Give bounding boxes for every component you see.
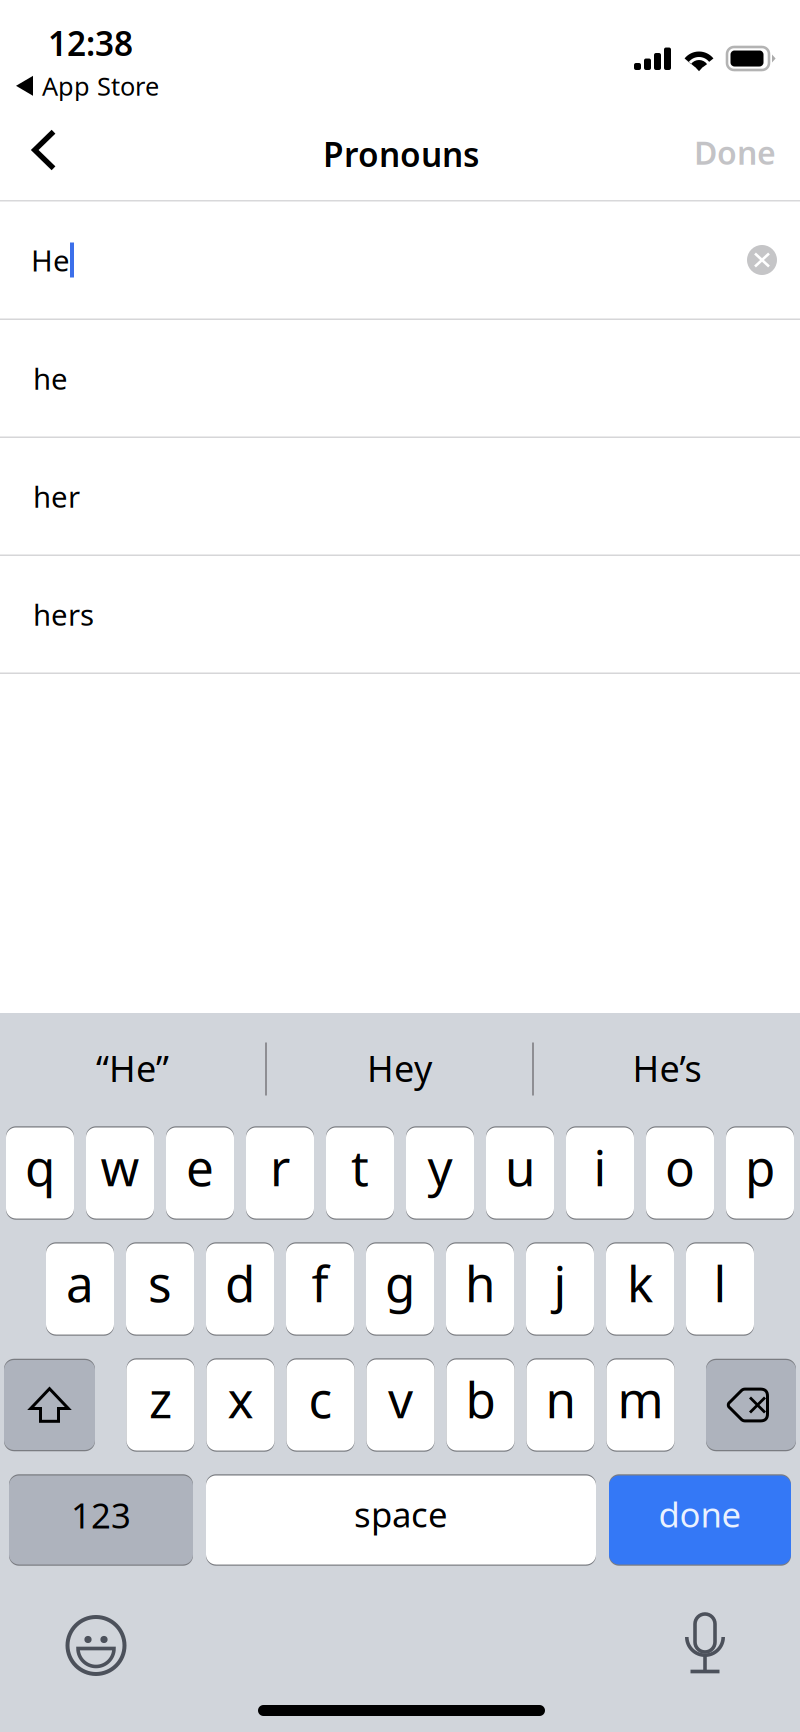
button[interactable]: Emoji xyxy=(67,1617,124,1674)
staticText: t xyxy=(351,1134,369,1200)
button[interactable]: Back xyxy=(0,105,82,195)
button[interactable]: her xyxy=(0,438,800,556)
button[interactable]: Delete xyxy=(706,1358,796,1451)
staticText: “He” xyxy=(96,1044,169,1092)
staticText: z xyxy=(149,1366,172,1432)
staticText: f xyxy=(311,1250,328,1316)
staticText: u xyxy=(505,1134,535,1200)
staticText: space xyxy=(354,1491,448,1537)
staticText: he xyxy=(33,359,68,398)
staticText: a xyxy=(66,1250,94,1316)
staticText: her xyxy=(33,477,80,516)
button[interactable]: r xyxy=(246,1126,314,1220)
button[interactable]: e xyxy=(166,1126,234,1220)
button[interactable]: n xyxy=(526,1358,594,1452)
button[interactable]: Shift xyxy=(4,1358,95,1451)
button[interactable]: k xyxy=(606,1242,674,1336)
button[interactable]: t xyxy=(326,1126,394,1220)
staticText: e xyxy=(186,1134,214,1200)
button[interactable]: u xyxy=(486,1126,554,1220)
button[interactable]: Done xyxy=(668,105,800,199)
button[interactable]: p xyxy=(726,1126,794,1220)
staticText: k xyxy=(627,1250,653,1316)
button[interactable]: 123 xyxy=(9,1474,193,1566)
button[interactable]: c xyxy=(286,1358,354,1452)
staticText: App Store xyxy=(42,69,159,103)
staticText: r xyxy=(270,1134,290,1200)
button[interactable]: x xyxy=(206,1358,274,1452)
staticText: 123 xyxy=(71,1492,131,1538)
button[interactable]: w xyxy=(86,1126,154,1220)
button[interactable]: o xyxy=(646,1126,714,1220)
button[interactable]: Hey xyxy=(267,1013,532,1095)
button[interactable]: he xyxy=(0,320,800,438)
staticText: d xyxy=(225,1250,255,1316)
button[interactable]: b xyxy=(446,1358,514,1452)
staticText: 12:38 xyxy=(48,21,133,65)
staticText: hers xyxy=(33,595,94,634)
button[interactable]: h xyxy=(446,1242,514,1336)
button[interactable]: Dictation xyxy=(685,1614,725,1676)
button[interactable]: space xyxy=(206,1474,596,1566)
button[interactable]: done xyxy=(609,1474,791,1566)
button[interactable]: Clear text xyxy=(740,238,784,282)
staticText: p xyxy=(745,1134,775,1200)
staticText: v xyxy=(388,1366,413,1432)
staticText: He xyxy=(31,240,70,279)
staticText: g xyxy=(385,1250,415,1316)
staticText: Done xyxy=(694,131,776,173)
button[interactable]: v xyxy=(366,1358,434,1452)
button[interactable]: l xyxy=(686,1242,754,1336)
staticText: l xyxy=(713,1250,726,1316)
staticText: s xyxy=(148,1250,172,1316)
staticText: He’s xyxy=(632,1044,701,1092)
staticText: x xyxy=(227,1366,253,1432)
button[interactable]: j xyxy=(526,1242,594,1336)
staticText: c xyxy=(308,1366,332,1432)
button[interactable]: App Store xyxy=(16,69,159,103)
button[interactable]: i xyxy=(566,1126,634,1220)
staticText: w xyxy=(100,1134,139,1200)
staticText: h xyxy=(465,1250,495,1316)
button[interactable]: m xyxy=(606,1358,674,1452)
button[interactable]: g xyxy=(366,1242,434,1336)
button[interactable]: a xyxy=(46,1242,114,1336)
staticText: n xyxy=(545,1366,575,1432)
button[interactable]: q xyxy=(6,1126,74,1220)
button[interactable]: hers xyxy=(0,556,800,674)
staticText: Hey xyxy=(367,1044,432,1092)
staticText: i xyxy=(593,1134,606,1200)
staticText: y xyxy=(427,1134,452,1200)
button[interactable]: z xyxy=(126,1358,194,1452)
staticText: o xyxy=(665,1134,695,1200)
staticText: Pronouns xyxy=(323,132,479,176)
button[interactable]: He’s xyxy=(534,1013,800,1095)
staticText: m xyxy=(617,1366,663,1432)
staticText: done xyxy=(658,1491,741,1537)
staticText: q xyxy=(25,1134,55,1200)
button[interactable]: y xyxy=(406,1126,474,1220)
staticText: j xyxy=(553,1250,566,1316)
button[interactable]: d xyxy=(206,1242,274,1336)
button[interactable]: s xyxy=(126,1242,194,1336)
button[interactable]: f xyxy=(286,1242,354,1336)
button[interactable]: “He” xyxy=(0,1013,265,1095)
staticText: b xyxy=(465,1366,495,1432)
